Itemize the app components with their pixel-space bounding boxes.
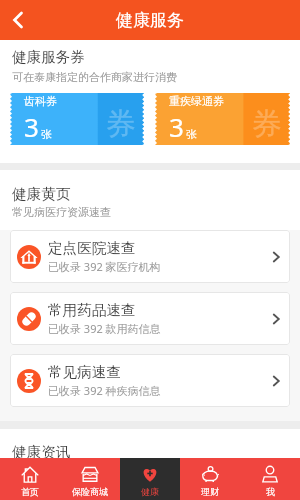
staticText: 券 xyxy=(252,105,282,143)
button[interactable]: 定点医院速查 xyxy=(10,230,290,283)
staticText: 健康黄页 xyxy=(12,185,71,203)
staticText: 齿科券 xyxy=(24,94,57,108)
staticText: 保险商城 xyxy=(72,486,108,497)
staticText: 已收录 392 款用药信息 xyxy=(48,321,161,336)
staticText: 张 xyxy=(41,127,52,141)
staticText: 已收录 392 种疾病信息 xyxy=(48,383,161,398)
staticText: 重疾绿通券 xyxy=(169,94,224,108)
staticText: 健康 xyxy=(141,486,159,497)
staticText: 已收录 392 家医疗机构 xyxy=(48,259,161,274)
staticText: 可在泰康指定的合作商家进行消费 xyxy=(12,70,177,84)
staticText: 3 xyxy=(169,109,184,144)
staticText: 理财 xyxy=(201,486,219,497)
button[interactable]: 常见病速查 xyxy=(10,354,290,407)
staticText: 常见病速查 xyxy=(48,363,121,381)
staticText: 首页 xyxy=(21,486,39,497)
button[interactable]: 首页 xyxy=(0,458,60,500)
staticText: 定点医院速查 xyxy=(48,239,136,257)
button[interactable]: 健康 xyxy=(120,458,180,500)
staticText: 健康资讯 xyxy=(12,443,71,458)
staticText: 3 xyxy=(24,109,39,144)
staticText: 常用药品速查 xyxy=(48,301,136,319)
button[interactable]: 常用药品速查 xyxy=(10,292,290,345)
staticText: 张 xyxy=(186,127,197,141)
button[interactable]: 券 xyxy=(155,93,290,145)
staticText: 券 xyxy=(106,105,136,143)
staticText: 健康服务 xyxy=(116,10,184,31)
staticText: 健康服务券 xyxy=(12,48,85,66)
staticText: 常见病医疗资源速查 xyxy=(12,205,111,219)
button[interactable]: 理财 xyxy=(180,458,240,500)
staticText: 我 xyxy=(266,486,275,497)
button[interactable]: 券 xyxy=(10,93,144,145)
button[interactable]: Back xyxy=(0,2,36,38)
button[interactable]: 保险商城 xyxy=(60,458,120,500)
button[interactable]: 我 xyxy=(240,458,300,500)
